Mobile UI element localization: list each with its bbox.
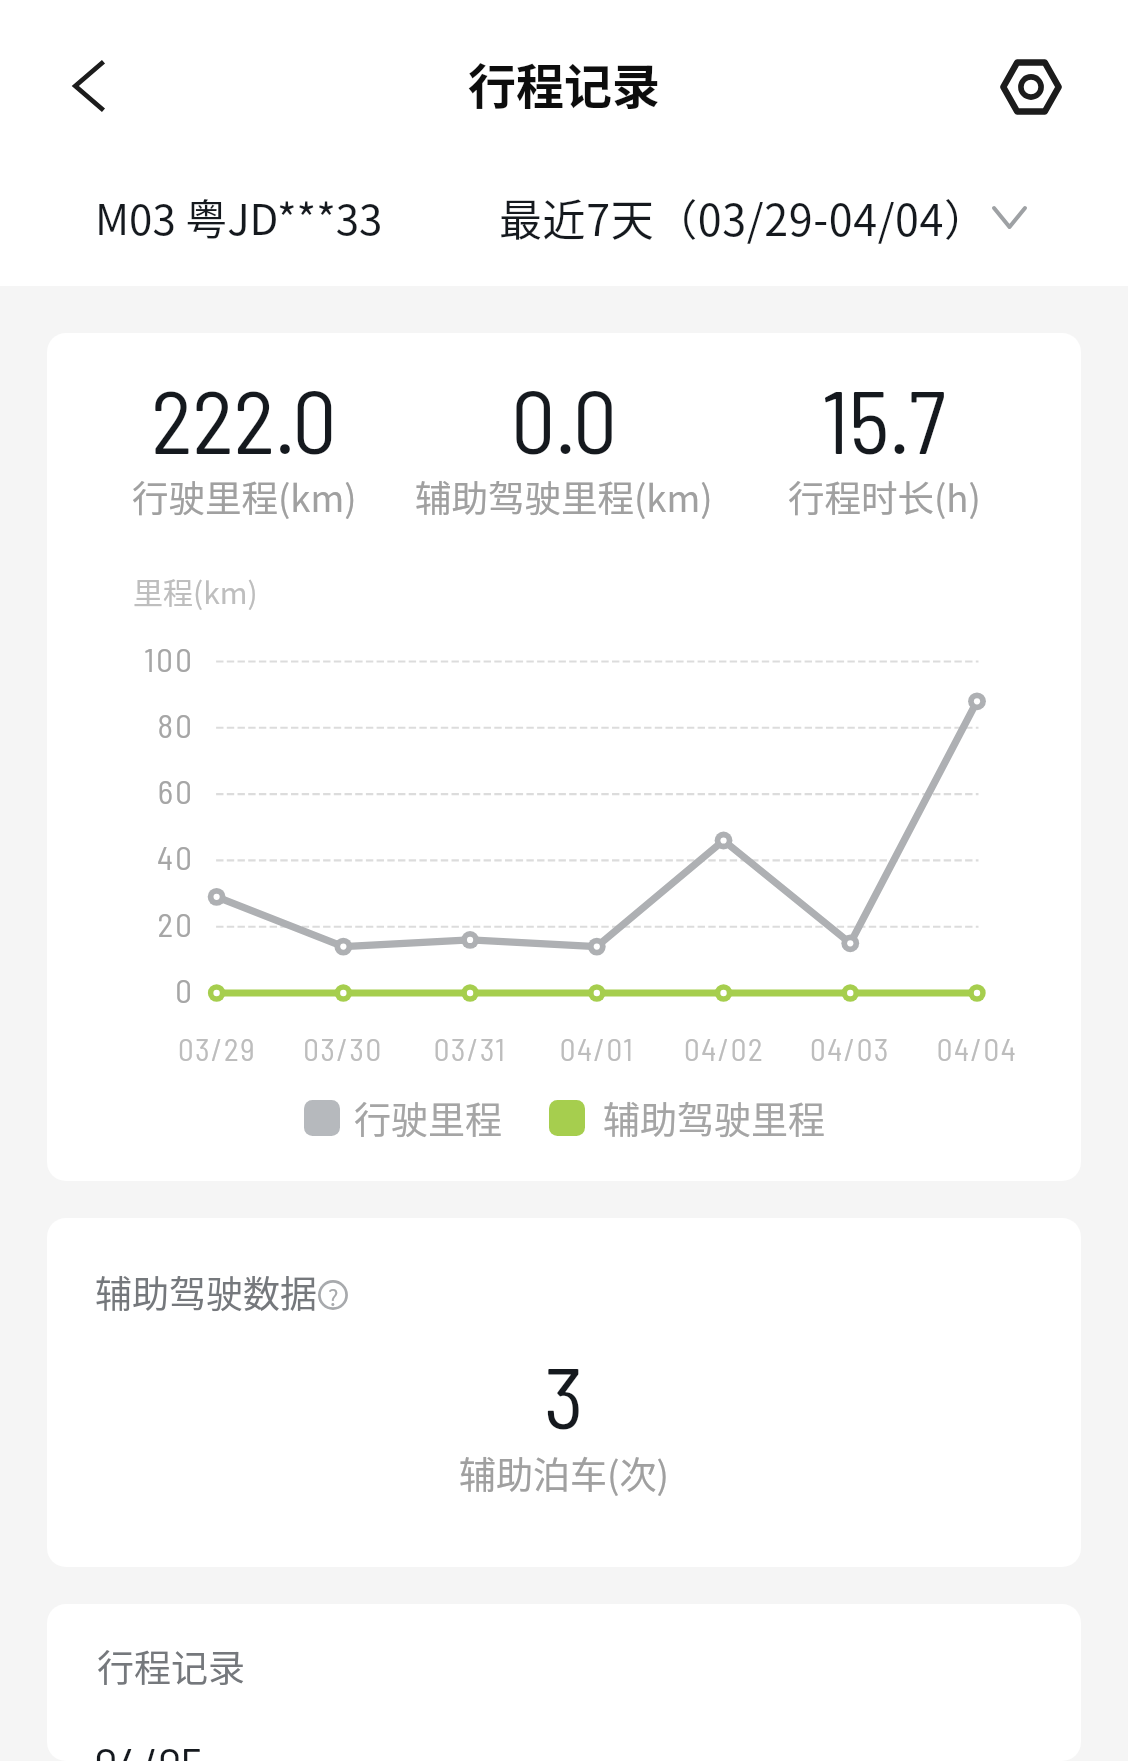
staticText: 辅助驾驶里程 (603, 1091, 825, 1145)
staticText: 04/04 (912, 1030, 1042, 1067)
staticText: 60 (47, 771, 194, 811)
staticText: 04/05 (94, 1735, 203, 1761)
staticText: 辅助驾驶数据 (95, 1265, 317, 1319)
staticText: 行驶里程(km) (132, 470, 357, 523)
staticText: M03 粤JD***33 (95, 186, 383, 247)
staticText: 80 (47, 705, 194, 745)
staticText: 15.7 (822, 366, 946, 472)
staticText: 04/02 (659, 1030, 789, 1067)
button[interactable]: Settings (996, 46, 1066, 128)
button[interactable]: 最近7天（03/29-04/04） (499, 177, 1027, 257)
staticText: 20 (47, 904, 194, 944)
staticText: 04/01 (532, 1030, 662, 1067)
button[interactable]: 行程记录 (47, 1604, 1081, 1761)
staticText: 0 (47, 970, 194, 1010)
staticText: 100 (47, 639, 194, 679)
staticText: ? (328, 1280, 339, 1310)
staticText: 40 (47, 837, 194, 877)
staticText: 3 (544, 1343, 584, 1446)
staticText: 0.0 (511, 366, 618, 472)
staticText: 03/31 (405, 1030, 535, 1067)
staticText: 行程时长(h) (788, 470, 981, 523)
staticText: 222.0 (151, 366, 337, 472)
staticText: 里程(km) (133, 569, 258, 612)
staticText: 辅助泊车(次) (459, 1446, 670, 1500)
staticText: 最近7天（03/29-04/04） (499, 186, 988, 248)
staticText: 行驶里程 (354, 1091, 502, 1145)
button[interactable]: Back (57, 46, 119, 126)
staticText: 辅助驾驶里程(km) (415, 470, 713, 523)
staticText: 04/03 (785, 1030, 915, 1067)
staticText: 行程记录 (97, 1639, 245, 1693)
button[interactable]: 辅助驾驶数据 (95, 1262, 348, 1322)
staticText: 行程记录 (468, 48, 661, 118)
staticText: 03/29 (152, 1030, 282, 1067)
staticText: 03/30 (278, 1030, 408, 1067)
